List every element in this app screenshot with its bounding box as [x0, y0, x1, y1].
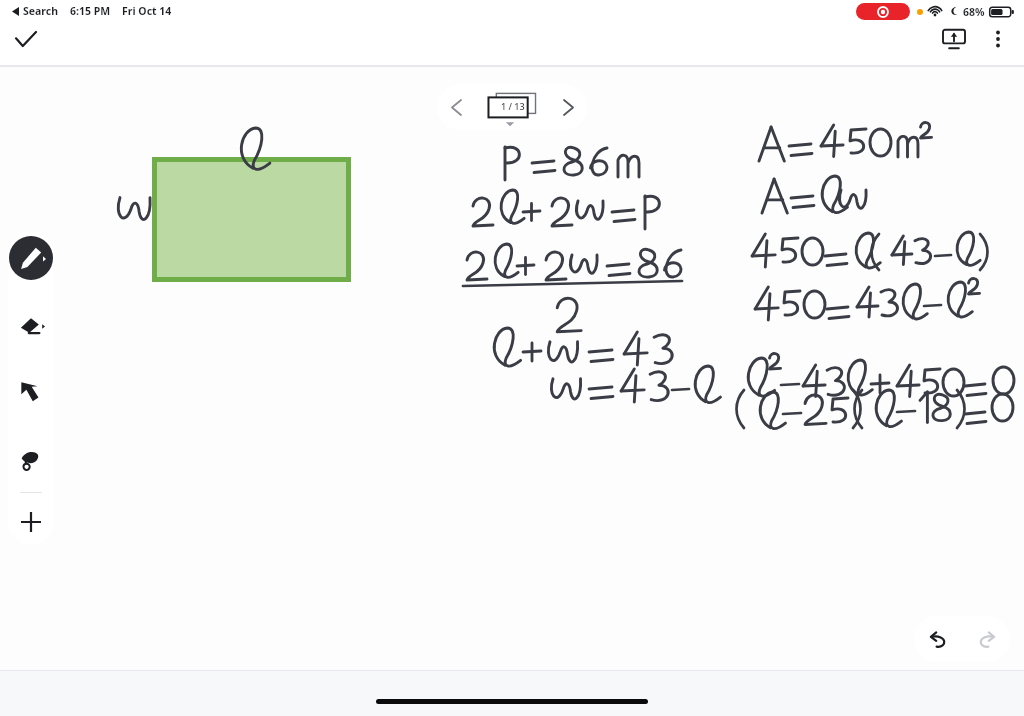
button[interactable]: Next page [549, 84, 587, 130]
button[interactable]: Done [6, 19, 46, 59]
staticText: Fri Oct 14 [122, 4, 172, 18]
button[interactable]: Redo [962, 616, 1010, 662]
button[interactable]: Pen tool [9, 236, 53, 280]
staticText: 6:15 PM [70, 4, 111, 18]
button[interactable]: Undo [914, 616, 962, 662]
staticText: Search [23, 4, 59, 18]
button[interactable]: Lasso tool [9, 437, 53, 481]
button[interactable]: Eraser tool [9, 303, 53, 347]
button[interactable]: Present [932, 17, 976, 61]
other: Screen recording [856, 3, 910, 20]
button[interactable]: Previous page [437, 84, 475, 130]
button[interactable]: Add tool [9, 500, 53, 544]
staticText: 1 / 13 [501, 100, 525, 112]
staticText: 68% [963, 5, 985, 19]
button[interactable]: More options [976, 17, 1020, 61]
button[interactable]: Select tool [9, 370, 53, 414]
